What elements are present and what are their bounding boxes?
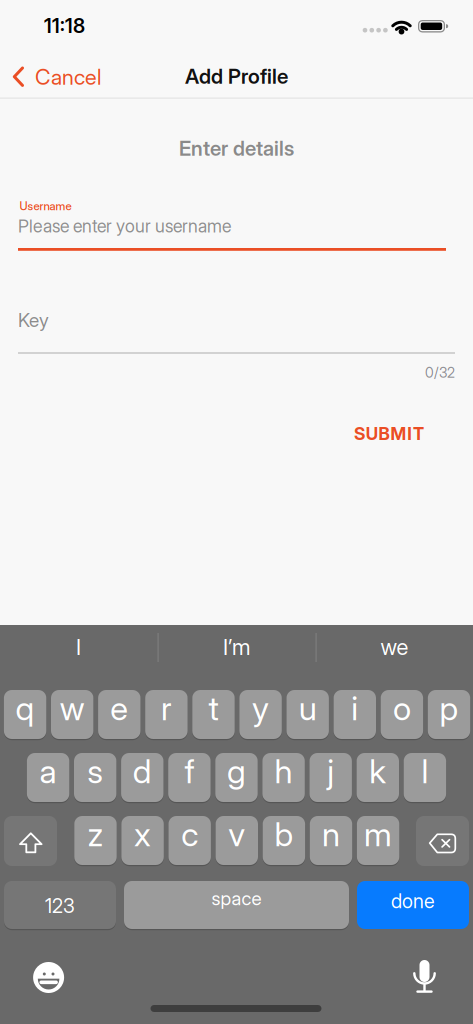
staticText: Cancel — [35, 64, 101, 90]
button[interactable]: a — [27, 753, 69, 802]
button[interactable]: z — [74, 816, 117, 865]
button[interactable]: o — [381, 690, 423, 739]
staticText: p — [439, 688, 458, 728]
button[interactable]: h — [262, 753, 305, 802]
button[interactable]: r — [145, 690, 188, 739]
button[interactable]: q — [4, 690, 46, 739]
staticText: Please enter your username — [18, 215, 231, 237]
staticText: I’m — [223, 634, 250, 660]
button[interactable]: l — [404, 753, 446, 802]
button[interactable]: p — [428, 690, 470, 739]
staticText: z — [87, 814, 103, 854]
staticText: x — [134, 814, 151, 854]
button[interactable]: Delete — [416, 816, 469, 866]
button[interactable]: e — [98, 690, 140, 739]
button[interactable]: Cancel — [12, 57, 101, 97]
staticText: g — [227, 751, 246, 791]
staticText: a — [40, 751, 57, 791]
button[interactable]: done — [357, 881, 469, 929]
button[interactable]: t — [192, 690, 235, 739]
button[interactable]: v — [216, 816, 258, 865]
staticText: I — [76, 634, 81, 660]
button[interactable]: u — [286, 690, 329, 739]
button[interactable]: k — [357, 753, 399, 802]
staticText: 0/32 — [425, 364, 455, 381]
button[interactable]: space — [124, 881, 349, 929]
staticText: d — [133, 751, 152, 791]
staticText: n — [322, 814, 340, 854]
staticText: 11:18 — [44, 13, 85, 38]
staticText: t — [208, 688, 218, 728]
staticText: we — [380, 634, 408, 660]
button[interactable]: s — [74, 753, 116, 802]
staticText: s — [87, 751, 103, 791]
staticText: h — [275, 751, 293, 791]
staticText: l — [421, 751, 428, 791]
button[interactable]: d — [121, 753, 163, 802]
button[interactable]: g — [215, 753, 258, 802]
staticText: q — [16, 688, 35, 728]
staticText: space — [211, 887, 261, 910]
button[interactable]: Shift — [4, 816, 57, 866]
button[interactable]: f — [168, 753, 211, 802]
button[interactable]: I’m — [158, 625, 315, 669]
button[interactable]: SUBMIT — [346, 417, 432, 450]
staticText: Enter details — [179, 136, 294, 161]
button[interactable]: Emoji — [27, 955, 71, 999]
staticText: v — [228, 814, 245, 854]
button[interactable]: j — [309, 753, 352, 802]
button[interactable]: Please enter your username — [18, 213, 446, 239]
staticText: SUBMIT — [354, 423, 424, 444]
staticText: c — [181, 814, 198, 854]
staticText: Add Profile — [185, 64, 288, 89]
staticText: u — [299, 688, 317, 728]
staticText: r — [161, 688, 172, 728]
staticText: e — [110, 688, 128, 728]
button[interactable]: 123 — [4, 881, 116, 929]
staticText: m — [364, 814, 392, 854]
staticText: 123 — [45, 894, 75, 918]
button[interactable]: n — [310, 816, 352, 865]
button[interactable]: m — [357, 816, 399, 865]
staticText: i — [351, 688, 358, 728]
staticText: o — [393, 688, 411, 728]
button[interactable]: x — [121, 816, 164, 865]
staticText: w — [60, 688, 85, 728]
staticText: f — [184, 751, 194, 791]
button[interactable]: Key — [18, 307, 455, 333]
button[interactable]: i — [334, 690, 376, 739]
button[interactable]: I — [0, 625, 157, 669]
button[interactable]: Dictate — [402, 957, 446, 1001]
button[interactable]: w — [51, 690, 93, 739]
button[interactable]: c — [168, 816, 211, 865]
button[interactable]: b — [263, 816, 305, 865]
button[interactable]: we — [316, 625, 473, 669]
staticText: b — [274, 814, 293, 854]
staticText: k — [369, 751, 386, 791]
staticText: Username — [19, 199, 71, 213]
button[interactable]: y — [239, 690, 282, 739]
staticText: done — [391, 889, 435, 913]
staticText: Key — [18, 308, 49, 331]
staticText: y — [252, 688, 269, 728]
staticText: j — [327, 751, 334, 791]
